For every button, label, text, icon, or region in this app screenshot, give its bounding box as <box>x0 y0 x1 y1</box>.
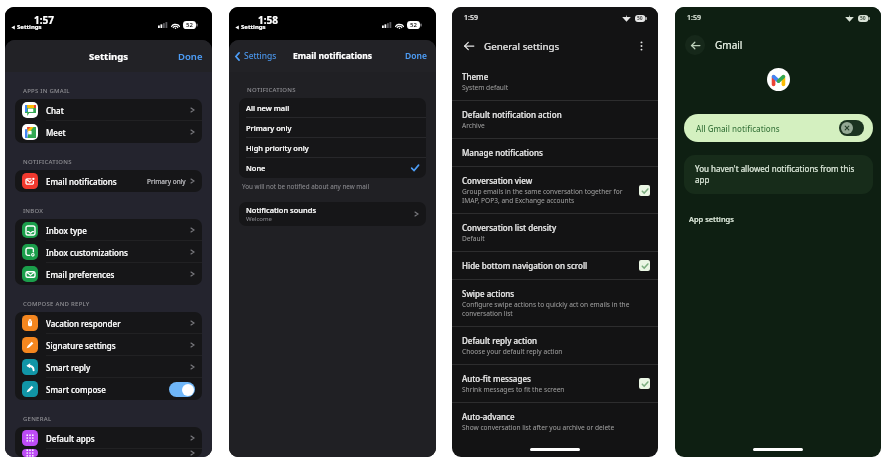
button[interactable]: None <box>239 158 426 178</box>
staticText: High priority only <box>246 143 309 153</box>
staticText: Meet <box>46 127 66 138</box>
staticText: 52 <box>186 21 193 29</box>
staticText: 1:57 <box>34 13 54 27</box>
button[interactable]: Default apps <box>15 427 202 449</box>
button[interactable]: Smart reply <box>15 356 202 378</box>
staticText: All Gmail notifications <box>696 123 780 134</box>
staticText: Swipe actions <box>462 288 515 299</box>
button[interactable]: Notification sounds <box>239 202 426 226</box>
staticText: Group emails in the same conversation to… <box>462 187 629 205</box>
button[interactable]: Smart compose <box>15 378 202 400</box>
button[interactable]: Signature settings <box>15 334 202 356</box>
staticText: None <box>246 163 266 173</box>
staticText: Smart compose <box>46 384 106 395</box>
staticText: GENERAL <box>23 415 52 423</box>
staticText: Archive <box>462 121 485 130</box>
staticText: Default notification action <box>462 109 562 120</box>
button[interactable]: Inbox customizations <box>15 241 202 263</box>
button[interactable]: Primary only <box>239 118 426 138</box>
button[interactable]: Email notifications <box>15 170 202 192</box>
staticText: Conversation view <box>462 175 533 186</box>
button[interactable]: Auto-fit messages <box>452 365 658 403</box>
staticText: Smart reply <box>46 362 91 373</box>
button[interactable]: Conversation list density <box>452 214 658 252</box>
staticText: Gmail <box>715 38 743 52</box>
button[interactable]: Meet <box>15 121 202 143</box>
button[interactable]: Manage notifications <box>452 139 658 167</box>
staticText: Auto-advance <box>462 411 515 422</box>
staticText: Theme <box>462 71 489 82</box>
staticText: Inbox type <box>46 225 87 236</box>
button[interactable]: Default notification action <box>452 101 658 139</box>
button[interactable]: Hide bottom navigation on scroll <box>452 252 658 280</box>
staticText: Configure swipe actions to quickly act o… <box>462 300 650 318</box>
button[interactable]: Inbox type <box>15 219 202 241</box>
staticText: Vacation responder <box>46 318 121 329</box>
button[interactable]: Chat <box>15 99 202 121</box>
staticText: 1:59 <box>687 13 701 23</box>
staticText: You haven't allowed notifications from t… <box>695 163 861 185</box>
staticText: Hide bottom navigation on scroll <box>462 260 588 271</box>
staticText: 52 <box>410 21 417 29</box>
staticText: Settings <box>244 50 277 62</box>
button[interactable]: App settings <box>689 214 734 224</box>
staticText: Primary only <box>246 123 292 133</box>
button[interactable]: Swipe actions <box>452 280 658 327</box>
staticText: Inbox customizations <box>46 247 128 258</box>
staticText: COMPOSE AND REPLY <box>23 300 90 308</box>
staticText: Manage notifications <box>462 147 543 158</box>
staticText: Show conversation list after you archive… <box>462 423 615 432</box>
button[interactable]: Email preferences <box>15 263 202 285</box>
staticText: Email notifications <box>46 176 117 187</box>
staticText: Conversation list density <box>462 222 557 233</box>
staticText: Default apps <box>46 433 95 444</box>
button[interactable]: Vacation responder <box>15 312 202 334</box>
button[interactable]: Done <box>178 50 203 63</box>
button[interactable]: All Gmail notifications <box>684 114 873 142</box>
staticText: Default reply action <box>462 335 538 346</box>
button[interactable]: Done <box>405 50 427 62</box>
staticText: Auto-fit messages <box>462 373 531 384</box>
staticText: Primary only <box>147 177 186 186</box>
button[interactable]: Settings <box>235 50 277 62</box>
staticText: Email preferences <box>46 269 115 280</box>
staticText: Welcome <box>246 215 272 223</box>
staticText: Settings <box>241 23 266 31</box>
button[interactable]: Conversation view <box>452 167 658 214</box>
staticText: General settings <box>484 40 560 53</box>
staticText: Shrink messages to fit the screen <box>462 385 565 394</box>
staticText: You will not be notified about any new m… <box>242 182 370 191</box>
button[interactable]: Theme <box>452 63 658 101</box>
button[interactable]: Back <box>685 35 705 55</box>
staticText: INBOX <box>23 207 44 215</box>
button[interactable]: All new mail <box>239 98 426 118</box>
button[interactable]: Back <box>461 38 477 54</box>
staticText: System default <box>462 83 509 92</box>
staticText: Choose your default reply action <box>462 347 563 356</box>
staticText: Default <box>462 234 485 243</box>
staticText: APPS IN GMAIL <box>23 87 70 95</box>
button[interactable]: Default reply action <box>452 327 658 365</box>
staticText: Email notifications <box>293 50 373 62</box>
staticText: Settings <box>89 50 128 63</box>
staticText: NOTIFICATIONS <box>23 158 72 166</box>
staticText: 50 <box>860 15 866 22</box>
button[interactable]: More options <box>633 38 649 54</box>
button[interactable]: Auto-advance <box>452 403 658 440</box>
staticText: 50 <box>637 15 643 22</box>
staticText: Notification sounds <box>246 205 317 215</box>
button[interactable] <box>15 449 202 457</box>
staticText: Settings <box>17 23 42 31</box>
button[interactable]: High priority only <box>239 138 426 158</box>
staticText: NOTIFICATIONS <box>247 86 296 94</box>
staticText: 1:58 <box>258 13 278 27</box>
staticText: 1:59 <box>464 13 478 23</box>
staticText: All new mail <box>246 103 290 113</box>
staticText: Signature settings <box>46 340 116 351</box>
staticText: Chat <box>46 105 64 116</box>
